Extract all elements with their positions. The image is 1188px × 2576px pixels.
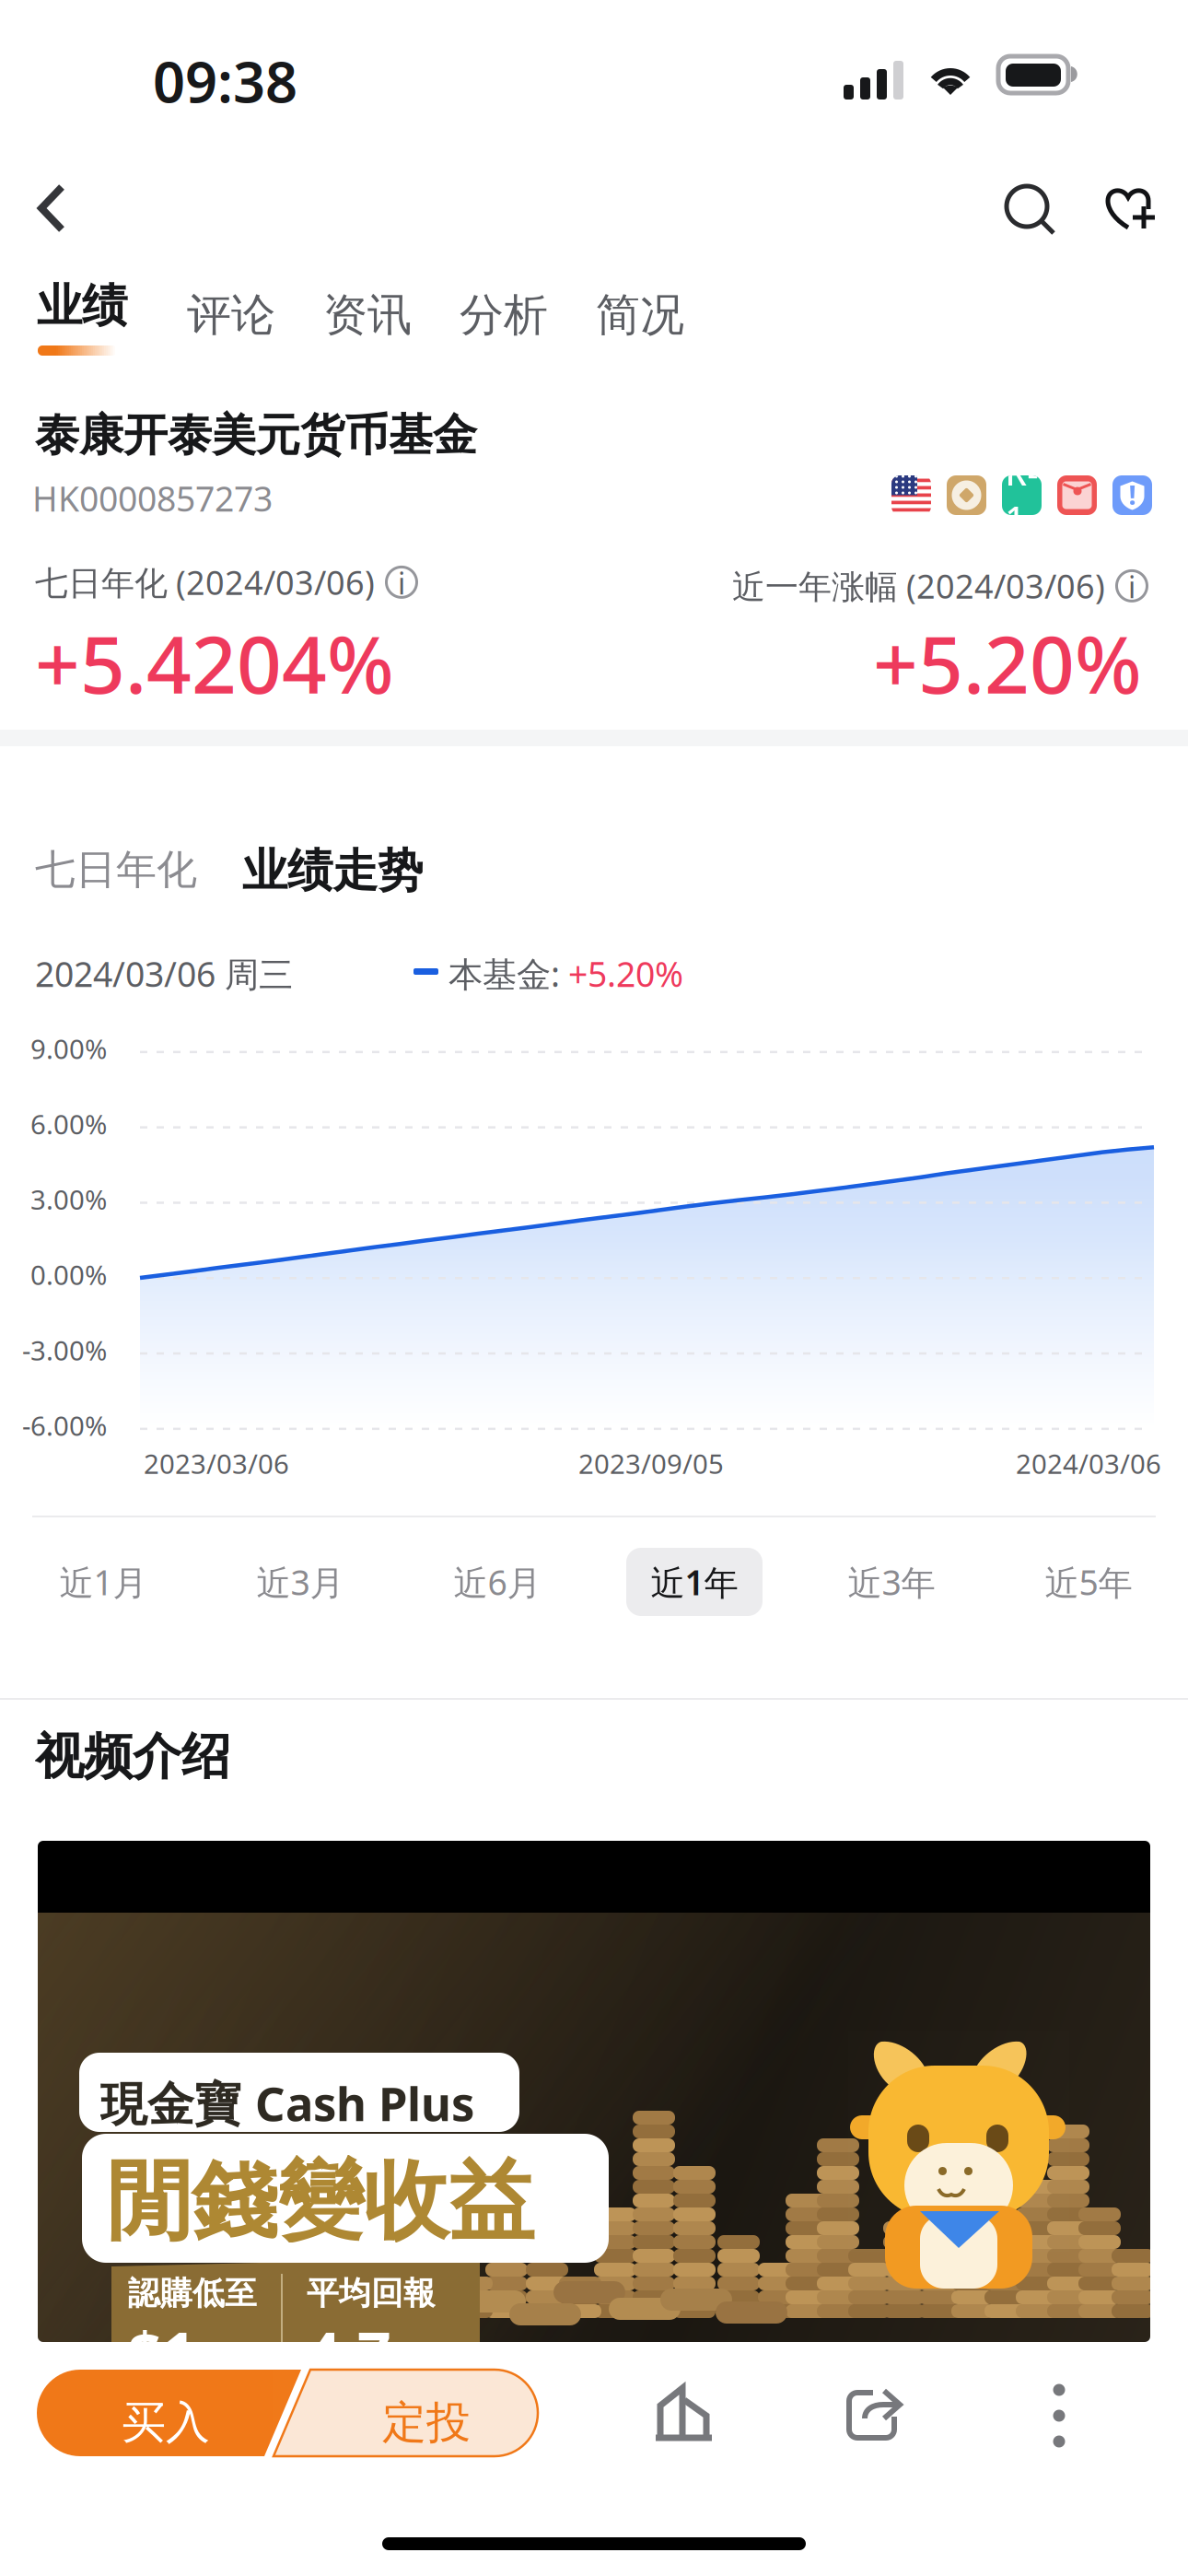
staticText: +5.4204% [35, 611, 394, 715]
staticText: 近1年 [651, 1559, 738, 1605]
staticText: 分析 [460, 288, 548, 342]
button[interactable]: 评论 [181, 286, 282, 345]
staticText: 业绩 [37, 278, 127, 334]
button[interactable]: 近1年 [611, 1543, 777, 1621]
staticText: 视频介绍 [35, 1727, 230, 1787]
staticText: 近1月 [59, 1559, 147, 1605]
staticText: 現金寶 Cash Plus [100, 2072, 474, 2134]
button[interactable]: 业绩 [37, 278, 138, 361]
button[interactable]: 定投 [273, 2370, 538, 2456]
staticText: R1 [1005, 450, 1038, 541]
staticText: 09:38 [153, 43, 297, 118]
staticText: 七日年化 [35, 845, 197, 895]
staticText: 业绩走势 [242, 843, 423, 899]
button[interactable]: 近1月 [20, 1543, 186, 1621]
staticText: +5.20% [568, 951, 683, 996]
button[interactable]: 资讯 [317, 286, 418, 345]
staticText: 0.00% [30, 1257, 107, 1293]
staticText: 评论 [187, 288, 275, 342]
staticText: 4.7 [307, 2313, 391, 2391]
button[interactable]: 简况 [589, 286, 691, 345]
staticText: 七日年化 (2024/03/06) [35, 560, 375, 604]
staticText: -3.00% [22, 1332, 107, 1368]
staticText: 近3月 [256, 1559, 344, 1605]
button[interactable]: Add to watchlist [1092, 166, 1177, 251]
staticText: $1 [128, 2313, 196, 2391]
button[interactable]: 分析 [453, 286, 554, 345]
staticText: i [1128, 567, 1136, 606]
staticText: % [393, 2339, 426, 2388]
button[interactable]: Fund company [637, 2365, 733, 2461]
button[interactable]: More [1011, 2368, 1107, 2464]
staticText: 2023/09/05 [578, 1446, 724, 1481]
staticText: 平均回報 [307, 2274, 436, 2313]
button[interactable]: 近6月 [414, 1543, 580, 1621]
staticText: 2024/03/06 [1016, 1446, 1161, 1481]
staticText: 近6月 [454, 1559, 541, 1605]
staticText: 资讯 [323, 288, 412, 342]
staticText: i [398, 564, 405, 603]
button[interactable]: Video introduction [38, 1841, 1150, 2342]
staticText: 近3年 [848, 1559, 935, 1605]
button[interactable]: Search [990, 170, 1075, 254]
staticText: 本基金: [448, 951, 560, 996]
staticText: 近5年 [1045, 1559, 1132, 1605]
staticText: 認購低至 [128, 2274, 257, 2313]
staticText: 閒錢變收益 [106, 2149, 534, 2254]
staticText: +5.20% [873, 611, 1142, 715]
button[interactable]: 买入 [37, 2370, 304, 2456]
staticText: 简况 [596, 288, 684, 342]
button[interactable]: Back [9, 166, 94, 251]
button[interactable]: 近3年 [809, 1543, 974, 1621]
staticText: ! [1129, 476, 1136, 512]
staticText: HK0000857273 [32, 475, 273, 521]
staticText: 近一年涨幅 (2024/03/06) [732, 564, 1105, 608]
staticText: 6.00% [30, 1106, 107, 1142]
staticText: -6.00% [22, 1407, 107, 1443]
button[interactable]: 近3月 [217, 1543, 383, 1621]
staticText: 2024/03/06 周三 [35, 951, 293, 996]
staticText: 泰康开泰美元货币基金 [35, 408, 477, 463]
staticText: 2023/03/06 [144, 1446, 289, 1481]
staticText: 买入 [122, 2395, 210, 2450]
staticText: 9.00% [30, 1031, 107, 1067]
button[interactable]: Share [826, 2368, 922, 2464]
button[interactable]: 近5年 [1006, 1543, 1171, 1621]
staticText: 3.00% [30, 1181, 107, 1217]
staticText: 定投 [382, 2395, 471, 2450]
